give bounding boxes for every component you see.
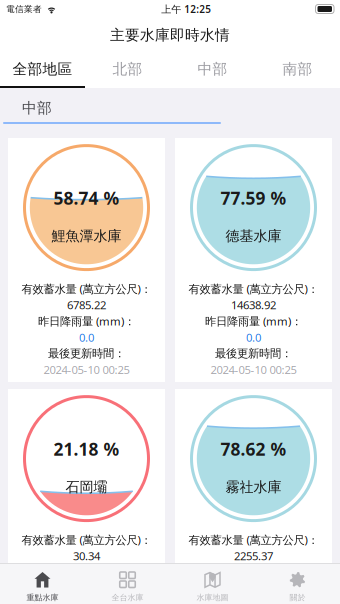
- staticText: 21.18 %: [53, 437, 119, 461]
- button[interactable]: 水庫地圖: [170, 564, 255, 604]
- staticText: 有效蓄水量 (萬立方公尺)：: [188, 532, 318, 547]
- staticText: 昨日降雨量 (mm)：: [205, 564, 302, 580]
- button[interactable]: 中部: [170, 52, 255, 88]
- staticText: 南部: [282, 60, 312, 78]
- staticText: 北部: [112, 60, 142, 78]
- staticText: 昨日降雨量 (mm)：: [38, 313, 135, 329]
- staticText: 有效蓄水量 (萬立方公尺)：: [188, 281, 318, 296]
- staticText: 霧社水庫: [225, 478, 281, 496]
- staticText: 最後更新時間：: [48, 597, 125, 604]
- staticText: 全台水庫: [111, 592, 143, 603]
- staticText: 主要水庫即時水情: [110, 26, 230, 44]
- button[interactable]: 77.59 %: [175, 138, 332, 382]
- staticText: 最後更新時間：: [215, 346, 292, 361]
- staticText: 最後更新時間：: [215, 597, 292, 604]
- staticText: 電信業者: [6, 3, 42, 14]
- staticText: 77.59 %: [220, 186, 286, 210]
- staticText: 有效蓄水量 (萬立方公尺)：: [21, 532, 151, 547]
- staticText: 昨日降雨量 (mm)：: [38, 564, 135, 580]
- staticText: 上午 12:25: [161, 2, 211, 16]
- staticText: 2255.37: [234, 548, 273, 564]
- staticText: 水庫地圖: [196, 592, 228, 603]
- staticText: 重點水庫: [26, 592, 58, 603]
- staticText: 0.0: [246, 330, 261, 345]
- button[interactable]: 21.18 %: [8, 389, 165, 604]
- button[interactable]: 南部: [255, 52, 340, 88]
- staticText: 2024-05-10 00:25: [210, 362, 296, 377]
- staticText: 78.62 %: [220, 437, 286, 461]
- staticText: 有效蓄水量 (萬立方公尺)：: [21, 281, 151, 296]
- staticText: 30.34: [73, 548, 100, 564]
- staticText: 關於: [289, 592, 305, 603]
- staticText: 0.0: [79, 330, 94, 345]
- staticText: 全部地區: [12, 60, 72, 78]
- staticText: 6785.22: [67, 297, 106, 313]
- staticText: 昨日降雨量 (mm)：: [205, 313, 302, 329]
- staticText: 最後更新時間：: [48, 346, 125, 361]
- staticText: 中部: [197, 60, 227, 78]
- button[interactable]: 全台水庫: [85, 564, 170, 604]
- button[interactable]: 全部地區: [0, 52, 85, 88]
- button[interactable]: 關於: [255, 564, 340, 604]
- staticText: 中部: [22, 99, 52, 117]
- staticText: 鯉魚潭水庫: [51, 227, 121, 245]
- staticText: 2024-05-10 00:25: [43, 362, 129, 377]
- staticText: 14638.92: [231, 297, 276, 313]
- staticText: 德基水庫: [225, 227, 281, 245]
- button[interactable]: 58.74 %: [8, 138, 165, 382]
- staticText: 58.74 %: [53, 186, 119, 210]
- button[interactable]: 78.62 %: [175, 389, 332, 604]
- button[interactable]: 北部: [85, 52, 170, 88]
- staticText: 石岡壩: [65, 478, 107, 496]
- button[interactable]: 重點水庫: [0, 564, 85, 604]
